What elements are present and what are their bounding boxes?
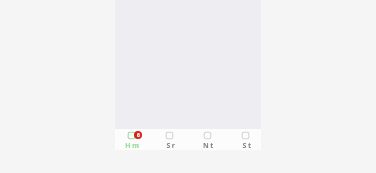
staticText: Nt: [203, 141, 215, 151]
staticText: 6: [137, 132, 140, 139]
button[interactable]: Settings: [237, 129, 253, 150]
button[interactable]: Notifications: [199, 129, 215, 150]
button[interactable]: Home: [123, 129, 139, 150]
button[interactable]: Search: [161, 129, 177, 150]
staticText: St: [242, 141, 253, 151]
staticText: Hm: [125, 141, 141, 151]
staticText: Sr: [166, 141, 177, 151]
